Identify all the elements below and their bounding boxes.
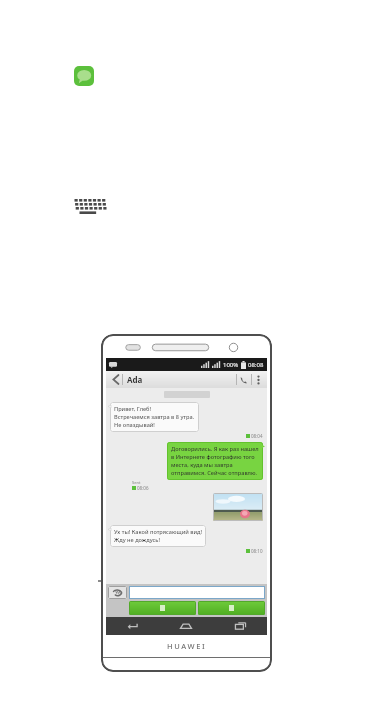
staticText: в Интернете фотографию того xyxy=(171,453,255,461)
staticText: 08:04 xyxy=(251,433,263,439)
staticText: 100% xyxy=(223,361,239,369)
button[interactable]: Back xyxy=(106,617,159,635)
staticText: 08:10 xyxy=(251,548,263,554)
staticText: Жду не дождусь! xyxy=(114,536,160,544)
button[interactable]: Message input field xyxy=(129,586,265,599)
staticText: Sent xyxy=(132,480,141,485)
staticText: 08:08 xyxy=(248,361,264,369)
button[interactable]: Attach file xyxy=(108,586,127,599)
button[interactable]: More options xyxy=(252,372,264,387)
button[interactable]: Back xyxy=(109,372,122,387)
button[interactable]: Messaging app xyxy=(74,66,94,86)
staticText: Не опаздывай! xyxy=(114,421,155,429)
button[interactable]: Договорились. Я как раз нашел xyxy=(167,442,263,480)
button[interactable]: Ух ты! Какой потрясающий вид! xyxy=(110,525,206,547)
button[interactable]: Recent apps xyxy=(213,617,267,635)
staticText: 08:06 xyxy=(137,485,149,491)
button[interactable]: Call xyxy=(237,372,251,387)
button[interactable]: Keyboard xyxy=(74,198,106,214)
button[interactable]: Send message xyxy=(198,601,265,615)
staticText: места, куда мы завтра xyxy=(171,461,233,469)
staticText: Ada xyxy=(127,374,143,385)
staticText: отправимся. Сейчас отправлю. xyxy=(171,469,258,477)
staticText: Привет, Глеб! xyxy=(114,405,152,413)
staticText: Встречаемся завтра в 8 утра. xyxy=(114,413,195,421)
button[interactable]: Photo attachment xyxy=(213,493,263,521)
button[interactable]: Home xyxy=(159,617,213,635)
button[interactable]: Привет, Глеб! xyxy=(110,402,199,432)
staticText: Договорились. Я как раз нашел xyxy=(171,445,259,453)
staticText: HUAWEI xyxy=(167,641,207,651)
staticText: Ух ты! Какой потрясающий вид! xyxy=(114,528,202,536)
button[interactable]: Send message xyxy=(129,601,196,615)
